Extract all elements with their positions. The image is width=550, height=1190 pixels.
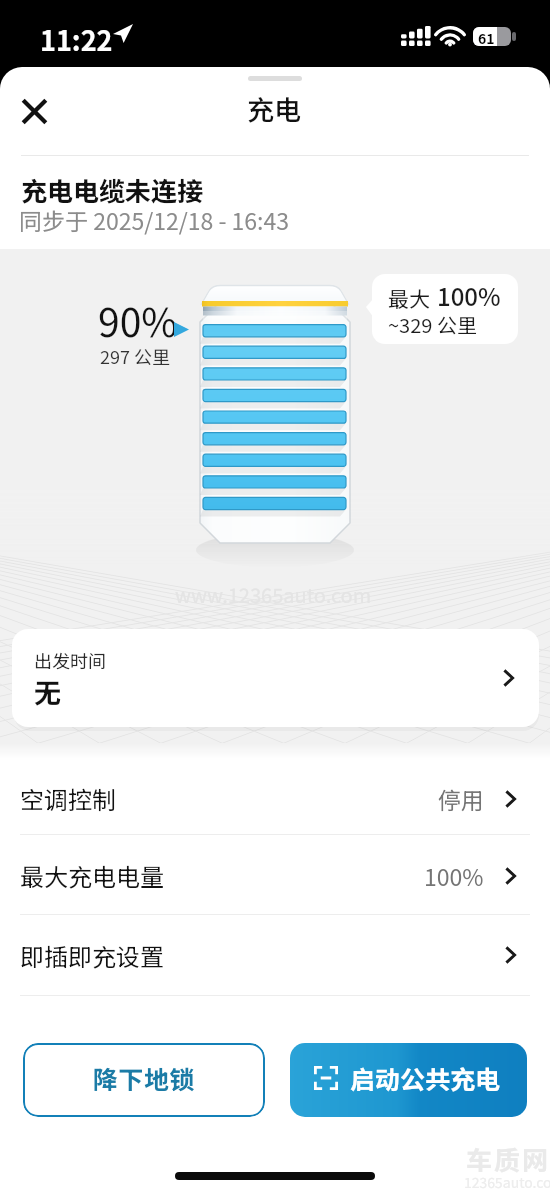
staticText: 充电 <box>247 89 301 128</box>
button[interactable]: 即插即充设置 <box>0 915 550 995</box>
staticText: 90% <box>98 292 178 348</box>
button[interactable]: Close <box>14 91 54 131</box>
staticText: 100% <box>437 278 501 313</box>
button[interactable]: 最大充电电量 <box>0 835 550 915</box>
staticText: 空调控制 <box>20 781 116 816</box>
staticText: www.12365auto.com <box>175 580 372 609</box>
staticText: 无 <box>34 672 61 711</box>
button[interactable]: 空调控制 <box>0 758 550 838</box>
staticText: 即插即充设置 <box>20 938 164 973</box>
staticText: 297 公里 <box>100 343 171 369</box>
staticText: 100% <box>424 859 484 892</box>
button[interactable]: 启动公共充电 <box>290 1043 527 1117</box>
staticText: 61 <box>478 28 495 48</box>
staticText: 同步于 2025/12/18 - 16:43 <box>19 203 290 236</box>
button[interactable]: 降下地锁 <box>23 1043 265 1117</box>
button[interactable]: 出发时间 <box>12 629 539 727</box>
staticText: 充电电缆未连接 <box>21 171 204 209</box>
staticText: 车质网 <box>466 1140 550 1178</box>
staticText: 最大充电电量 <box>20 858 164 893</box>
staticText: 停用 <box>438 782 484 815</box>
staticText: 最大 <box>388 283 430 313</box>
staticText: ~329 公里 <box>388 310 477 339</box>
staticText: 降下地锁 <box>93 1060 196 1096</box>
staticText: 12365auto.com <box>464 1172 550 1190</box>
staticText: 启动公共充电 <box>350 1060 501 1096</box>
staticText: 11:22 <box>40 20 113 59</box>
staticText: 出发时间 <box>34 647 106 673</box>
